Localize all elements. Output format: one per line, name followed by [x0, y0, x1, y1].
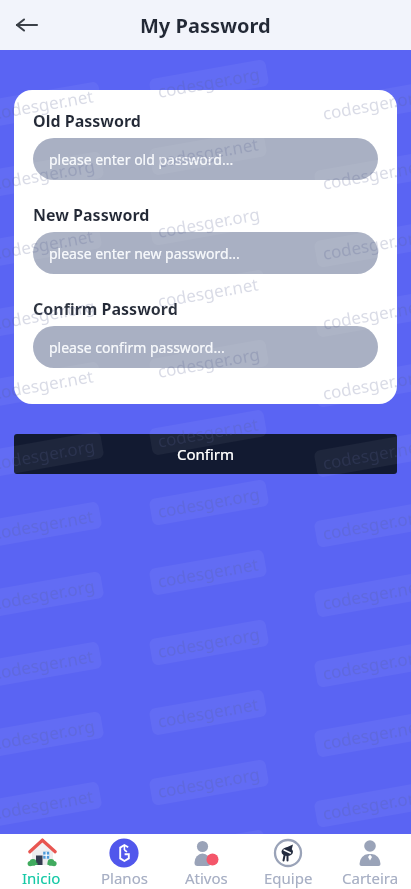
staticText: codesger.org	[321, 784, 411, 825]
button[interactable]: please confirm password...	[33, 326, 378, 368]
staticText: My Password	[140, 12, 271, 39]
staticText: codesger.net	[156, 272, 260, 313]
staticText: codesger.org	[0, 154, 97, 195]
staticText: Inicio	[22, 868, 61, 888]
staticText: codesger.net	[0, 364, 95, 405]
staticText: codesger.org	[0, 434, 97, 475]
staticText: codesger.net	[156, 552, 260, 593]
staticText: Confirm	[177, 444, 235, 464]
staticText: codesger.org	[156, 202, 262, 243]
staticText: Old Password	[33, 110, 141, 132]
staticText: codesger.net	[321, 574, 411, 615]
staticText: Equipe	[264, 868, 313, 888]
staticText: codesger.org	[321, 84, 411, 125]
staticText: codesger.net	[321, 154, 411, 195]
button[interactable]: Inicio	[0, 834, 83, 889]
staticText: codesger.org	[0, 574, 97, 615]
button[interactable]: Equipe	[247, 834, 329, 889]
button[interactable]: please enter old password...	[33, 138, 378, 180]
button[interactable]: Carteira	[329, 834, 411, 889]
staticText: codesger.net	[0, 84, 95, 125]
staticText: codesger.org	[321, 364, 411, 405]
staticText: codesger.net	[156, 132, 260, 173]
button[interactable]: Confirm	[14, 434, 397, 474]
staticText: codesger.org	[156, 622, 262, 663]
staticText: codesger.net	[321, 714, 411, 755]
staticText: codesger.net	[0, 644, 95, 685]
staticText: please enter new password...	[49, 244, 240, 263]
staticText: Planos	[101, 868, 148, 888]
staticText: New Password	[33, 204, 150, 226]
staticText: codesger.org	[321, 224, 411, 265]
staticText: codesger.net	[156, 832, 260, 834]
staticText: please enter old password...	[49, 150, 234, 169]
staticText: codesger.net	[156, 412, 260, 453]
button[interactable]: Planos	[83, 834, 165, 889]
staticText: codesger.net	[321, 294, 411, 335]
staticText: Confirm Password	[33, 298, 178, 320]
staticText: Carteira	[342, 868, 399, 888]
staticText: codesger.org	[321, 644, 411, 685]
button[interactable]	[8, 6, 46, 44]
staticText: codesger.net	[156, 692, 260, 733]
staticText: please confirm password...	[49, 338, 225, 357]
staticText: codesger.org	[156, 482, 262, 523]
staticText: codesger.net	[0, 224, 95, 265]
button[interactable]: Ativos	[165, 834, 247, 889]
staticText: codesger.net	[0, 504, 95, 545]
staticText: Ativos	[185, 868, 228, 888]
staticText: codesger.org	[156, 342, 262, 383]
staticText: codesger.org	[0, 714, 97, 755]
staticText: codesger.org	[321, 504, 411, 545]
staticText: codesger.net	[321, 434, 411, 475]
staticText: codesger.org	[156, 62, 262, 103]
button[interactable]: please enter new password...	[33, 232, 378, 274]
staticText: codesger.org	[156, 762, 262, 803]
staticText: codesger.net	[0, 784, 95, 825]
staticText: codesger.org	[0, 294, 97, 335]
